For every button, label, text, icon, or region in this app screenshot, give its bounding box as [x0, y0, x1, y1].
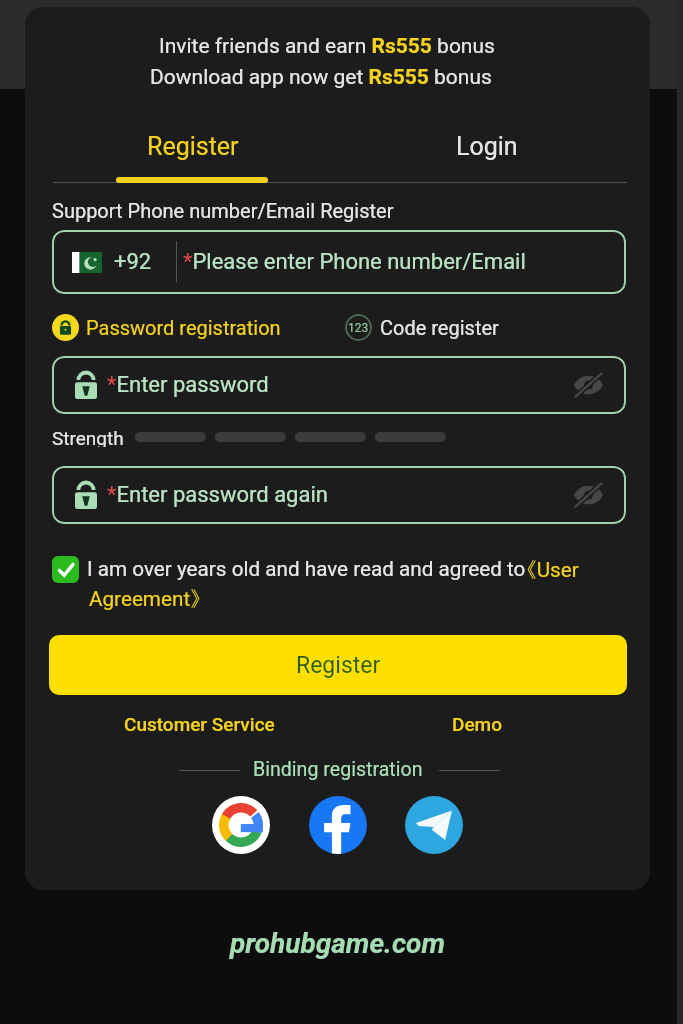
button[interactable]: Login — [456, 132, 518, 161]
staticText: Password registration — [86, 316, 281, 339]
staticText: Download app now get Rs555 bonus — [150, 65, 492, 90]
staticText: +92 — [114, 249, 152, 275]
button[interactable]: Agree to user agreement — [52, 556, 79, 583]
button[interactable]: Sign in with Google — [212, 796, 270, 854]
button[interactable]: *Enter password — [52, 356, 626, 414]
staticText: Register — [147, 132, 239, 161]
button[interactable]: Sign in with Telegram — [405, 796, 463, 854]
staticText: *Please enter Phone number/Email — [183, 249, 526, 275]
staticText: Demo — [452, 713, 502, 735]
staticText: Customer Service — [124, 713, 275, 735]
staticText: Strength — [52, 427, 124, 447]
button[interactable]: +92 — [52, 230, 626, 294]
staticText: Support Phone number/Email Register — [52, 199, 394, 222]
button[interactable]: Password registration — [52, 313, 281, 341]
staticText: *Enter password — [107, 372, 269, 398]
button[interactable]: 123 — [345, 313, 499, 341]
staticText: 《User — [516, 557, 579, 583]
button[interactable]: Show password — [565, 362, 611, 408]
staticText: I am over years old and have read and ag… — [87, 557, 526, 581]
button[interactable]: Demo — [452, 713, 502, 735]
staticText: Invite friends and earn Rs555 bonus — [159, 34, 495, 59]
button[interactable]: Customer Service — [124, 713, 275, 735]
button[interactable]: Agreement》 — [89, 586, 211, 612]
staticText: Binding registration — [253, 758, 423, 781]
staticText: prohubgame.com — [230, 927, 445, 960]
button[interactable]: Register — [147, 132, 239, 161]
staticText: Code register — [380, 316, 499, 339]
button[interactable]: Register — [49, 635, 627, 695]
staticText: Agreement》 — [89, 586, 211, 612]
staticText: 123 — [348, 321, 369, 335]
button[interactable]: Sign in with Facebook — [309, 796, 367, 854]
button[interactable]: Show password — [565, 472, 611, 518]
staticText: *Enter password again — [107, 482, 328, 508]
button[interactable]: *Enter password again — [52, 466, 626, 524]
staticText: Register — [296, 652, 381, 679]
button[interactable]: 《User — [516, 557, 579, 583]
staticText: Login — [456, 132, 518, 161]
